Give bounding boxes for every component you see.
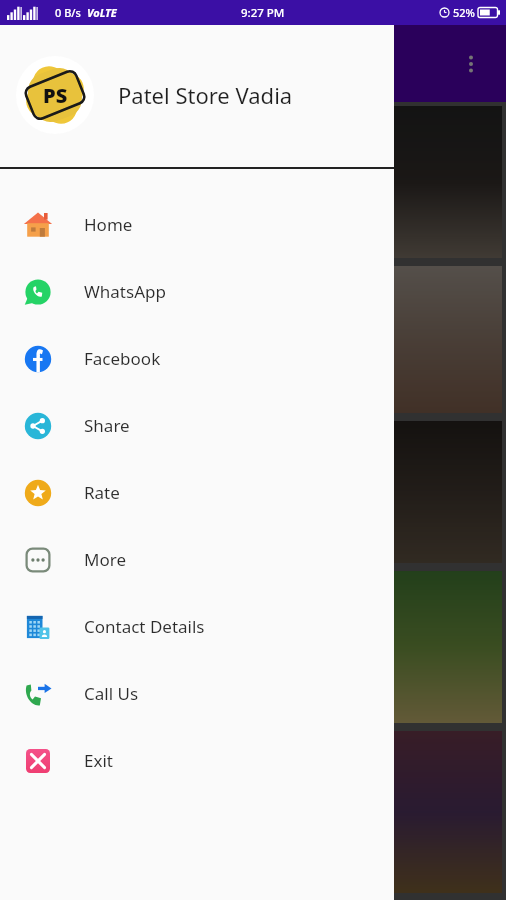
other: Share <box>23 411 53 441</box>
staticText: Facebook <box>84 347 161 370</box>
staticText: Contact Details <box>84 615 205 638</box>
staticText: Rate <box>84 481 120 504</box>
button[interactable]: Call Us <box>0 660 394 727</box>
other: WhatsApp <box>23 277 53 307</box>
staticText: 52% <box>453 5 475 20</box>
staticText: Exit <box>84 749 113 772</box>
button[interactable]: WhatsApp <box>0 258 394 325</box>
other: Contact Details <box>23 612 53 642</box>
button[interactable]: More options <box>454 47 488 81</box>
other: Facebook <box>23 344 53 374</box>
button[interactable]: Home <box>0 191 394 258</box>
other: Rate <box>23 478 53 508</box>
staticText: Call Us <box>84 682 139 705</box>
button[interactable]: Facebook <box>0 325 394 392</box>
button[interactable]: Share <box>0 392 394 459</box>
button[interactable]: Exit <box>0 727 394 794</box>
staticText: VoLTE <box>87 5 117 20</box>
staticText: Home <box>84 213 133 236</box>
other: More <box>23 545 53 575</box>
staticText: Share <box>84 414 130 437</box>
other: Call Us <box>23 679 53 709</box>
staticText: WhatsApp <box>84 280 166 303</box>
staticText: Patel Store Vadia <box>118 80 293 110</box>
button[interactable]: Rate <box>0 459 394 526</box>
other: Exit <box>23 746 53 776</box>
staticText: PS <box>43 82 68 109</box>
other: Home <box>23 210 53 240</box>
button[interactable]: Contact Details <box>0 593 394 660</box>
staticText: More <box>84 548 126 571</box>
staticText: 9:27 PM <box>241 5 285 21</box>
button[interactable]: More <box>0 526 394 593</box>
staticText: 0 B/s <box>55 5 81 20</box>
